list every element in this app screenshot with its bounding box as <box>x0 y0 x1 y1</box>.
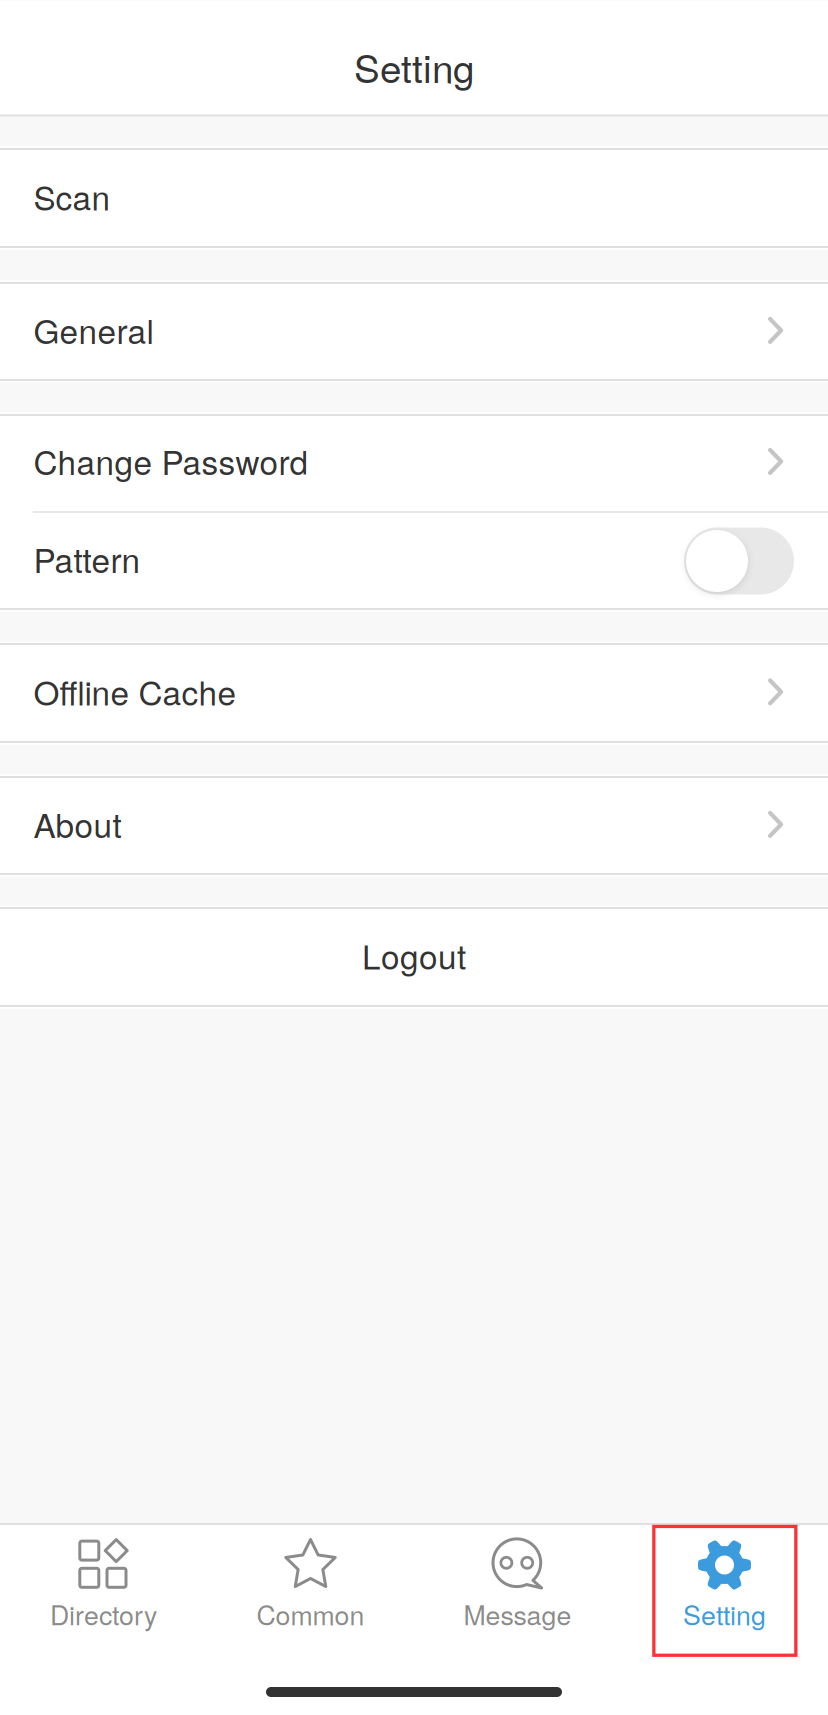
button[interactable]: Pattern <box>0 511 828 610</box>
staticText: Logout <box>362 931 466 979</box>
button[interactable]: Logout <box>0 909 828 1005</box>
button[interactable]: General <box>0 282 828 381</box>
staticText: General <box>33 306 153 353</box>
staticText: Scan <box>33 172 110 220</box>
staticText: Offline Cache <box>33 667 236 715</box>
staticText: Message <box>463 1595 571 1633</box>
button[interactable]: Scan <box>0 148 828 248</box>
staticText: Setting <box>354 39 474 94</box>
button[interactable]: Message <box>414 1525 621 1657</box>
staticText: Common <box>256 1595 364 1633</box>
staticText: Pattern <box>33 535 140 582</box>
staticText: Directory <box>50 1595 157 1633</box>
staticText: Setting <box>683 1595 766 1633</box>
button[interactable]: Directory <box>0 1525 207 1657</box>
button[interactable]: Offline Cache <box>0 643 828 743</box>
button[interactable]: Change Password <box>0 414 828 511</box>
staticText: About <box>33 800 121 847</box>
button[interactable]: Common <box>207 1525 414 1657</box>
staticText: Change Password <box>33 437 308 484</box>
button[interactable]: About <box>0 776 828 875</box>
button[interactable]: Setting <box>621 1525 828 1657</box>
